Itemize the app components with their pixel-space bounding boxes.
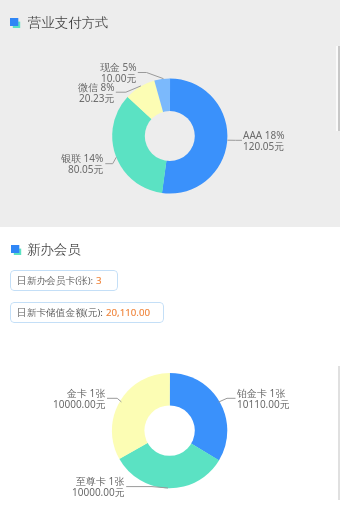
- staticText: 铂金卡 1张: [237, 386, 286, 400]
- staticText: 现金 5%: [100, 60, 137, 74]
- staticText: 银联 14%: [61, 151, 104, 165]
- staticText: 20.23元: [79, 91, 115, 105]
- staticText: 80.05元: [68, 162, 104, 176]
- staticText: 金卡 1张: [67, 386, 106, 400]
- staticText: 新办会员: [27, 241, 81, 258]
- staticText: 20,110.00: [106, 306, 150, 319]
- button[interactable]: Section: [8, 242, 25, 259]
- staticText: 10000.00元: [53, 397, 106, 411]
- staticText: 10110.00元: [237, 397, 290, 411]
- staticText: AAA 18%: [243, 128, 285, 142]
- button[interactable]: 日新办会员卡(张):: [10, 270, 118, 291]
- staticText: 日新卡储值金额(元):: [17, 306, 106, 319]
- staticText: 10.00元: [101, 71, 137, 85]
- button[interactable]: 日新卡储值金额(元):: [10, 302, 164, 323]
- staticText: 至尊卡 1张: [76, 474, 125, 488]
- staticText: 3: [96, 274, 102, 287]
- staticText: 营业支付方式: [28, 14, 109, 31]
- staticText: 120.05元: [243, 139, 285, 153]
- staticText: 10000.00元: [72, 485, 125, 499]
- staticText: 微信 8%: [78, 80, 115, 94]
- staticText: 日新办会员卡(张):: [17, 274, 96, 287]
- button[interactable]: Section: [7, 15, 24, 32]
